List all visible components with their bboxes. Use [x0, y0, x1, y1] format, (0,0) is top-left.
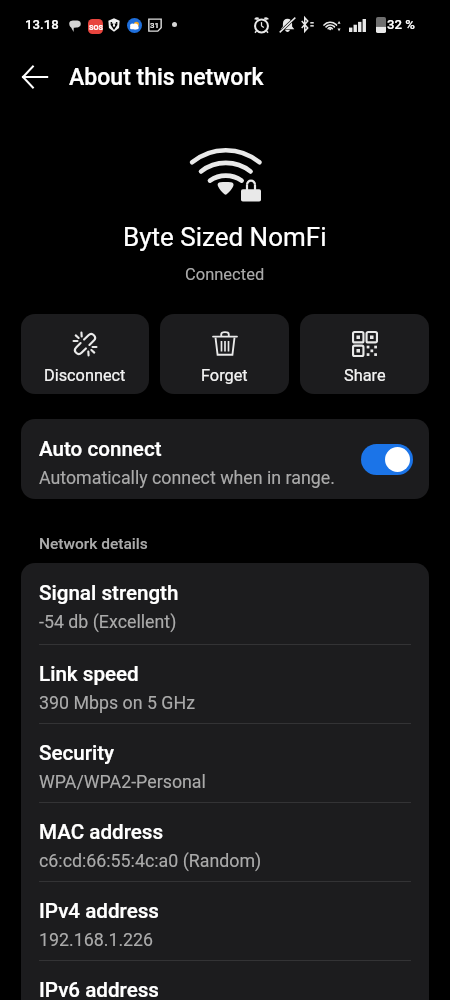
staticText: MAC address: [39, 820, 164, 844]
button[interactable]: Security: [21, 723, 429, 802]
staticText: IPv4 address: [39, 899, 159, 923]
button[interactable]: Auto connect: [21, 419, 429, 499]
staticText: SOS: [89, 23, 103, 31]
staticText: Link speed: [39, 662, 139, 686]
staticText: WPA/WPA2-Personal: [39, 771, 206, 792]
button[interactable]: Disconnect: [21, 314, 149, 394]
staticText: Byte Sized NomFi: [123, 222, 327, 252]
staticText: 32 %: [387, 17, 415, 32]
staticText: Automatically connect when in range.: [39, 467, 335, 488]
staticText: 13.18: [25, 17, 59, 32]
staticText: Share: [344, 366, 386, 385]
staticText: 31: [150, 21, 160, 30]
staticText: Connected: [185, 265, 265, 284]
button[interactable]: Forget: [160, 314, 289, 394]
staticText: c6:cd:66:55:4c:a0 (Random): [39, 850, 262, 871]
staticText: 390 Mbps on 5 GHz: [39, 692, 196, 713]
staticText: Network details: [39, 535, 148, 553]
button[interactable]: MAC address: [21, 802, 429, 881]
staticText: About this network: [69, 64, 264, 91]
button[interactable]: IPv4 address: [21, 881, 429, 960]
button[interactable]: IPv6 address: [21, 960, 429, 1000]
button[interactable]: Link speed: [21, 644, 429, 723]
staticText: 192.168.1.226: [39, 929, 154, 950]
button[interactable]: Signal strength: [21, 563, 429, 644]
button[interactable]: Share: [300, 314, 429, 394]
staticText: Forget: [201, 366, 248, 385]
staticText: Auto connect: [39, 437, 162, 461]
staticText: Security: [39, 741, 115, 765]
staticText: -54 db (Excellent): [39, 611, 177, 632]
button[interactable]: Back: [11, 53, 59, 101]
staticText: IPv6 address: [39, 978, 159, 1000]
staticText: Disconnect: [44, 366, 126, 385]
staticText: Signal strength: [39, 581, 179, 605]
